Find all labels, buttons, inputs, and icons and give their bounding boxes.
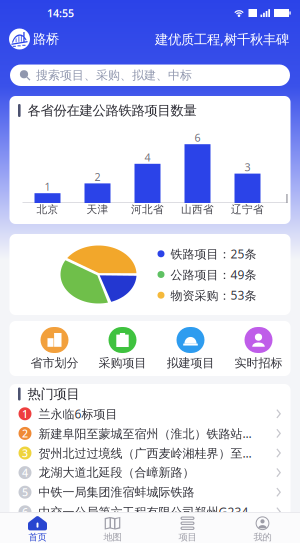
staticText: 项目 [178,531,196,543]
staticText: 公路项目：49条 [170,266,256,282]
staticText: 北京 [36,203,58,216]
staticText: 首页 [28,531,46,543]
button[interactable]: 首页 [0,513,75,543]
button[interactable]: 实时招标 [224,321,292,376]
staticText: 1 [22,407,28,421]
staticText: 路桥 [33,31,59,47]
staticText: 省市划分 [30,356,78,370]
staticText: 河北省 [131,203,164,216]
staticText: 热门项目 [28,386,80,402]
staticText: 5 [22,485,28,499]
staticText: 我的 [253,531,271,543]
staticText: 1 [44,180,50,194]
button[interactable]: 拟建项目 [156,321,224,376]
staticText: 实时招标 [234,356,282,370]
button[interactable]: 5 [18,482,281,502]
button[interactable]: 地图 [75,513,150,543]
staticText: 搜索项目、采购、拟建、中标 [36,68,192,83]
staticText: 地图 [103,531,121,543]
staticText: 各省份在建公路铁路项目数量 [28,102,197,119]
staticText: 龙湖大道北延段（合嶂新路） [38,465,194,480]
staticText: 中铁一局集团淮宿蚌城际铁路 [38,485,194,499]
staticText: 贺州北过过境线（广西麦岭湘桂界）至... [38,445,251,461]
staticText: 新建阜阳至蒙城至宿州（淮北）铁路站... [38,425,251,441]
staticText: 兰永临6标项目 [38,406,117,422]
button[interactable]: 搜索项目、采购、拟建、中标 [10,64,290,86]
staticText: 中交一公局第六工程有限公司郑州G234... [38,504,257,520]
staticText: 6 [22,505,28,519]
staticText: 4 [144,150,150,164]
button[interactable]: 采购项目 [88,321,156,376]
button[interactable]: 我的 [225,513,300,543]
staticText: 山西省 [181,203,214,216]
button[interactable]: 4 [18,463,281,482]
staticText: 辽宁省 [231,203,264,216]
staticText: 14:55 [47,6,74,20]
staticText: 建优质工程,树千秋丰碑 [155,30,289,48]
button[interactable]: 项目 [150,513,225,543]
staticText: 物资采购：53条 [170,287,256,303]
staticText: 6 [194,131,200,145]
button[interactable]: 2 [18,424,281,443]
staticText: 2 [22,426,28,440]
staticText: 采购项目 [98,356,146,370]
staticText: 2 [94,170,100,184]
button[interactable]: 6 [18,502,281,522]
staticText: 天津 [86,203,108,216]
staticText: 4 [22,465,28,480]
staticText: 铁路项目：25条 [170,246,256,262]
staticText: 3 [244,160,250,174]
button[interactable]: 1 [18,404,281,424]
button[interactable]: 省市划分 [20,321,88,376]
button[interactable]: 3 [18,443,281,463]
staticText: 拟建项目 [166,356,214,370]
staticText: 3 [22,446,28,460]
